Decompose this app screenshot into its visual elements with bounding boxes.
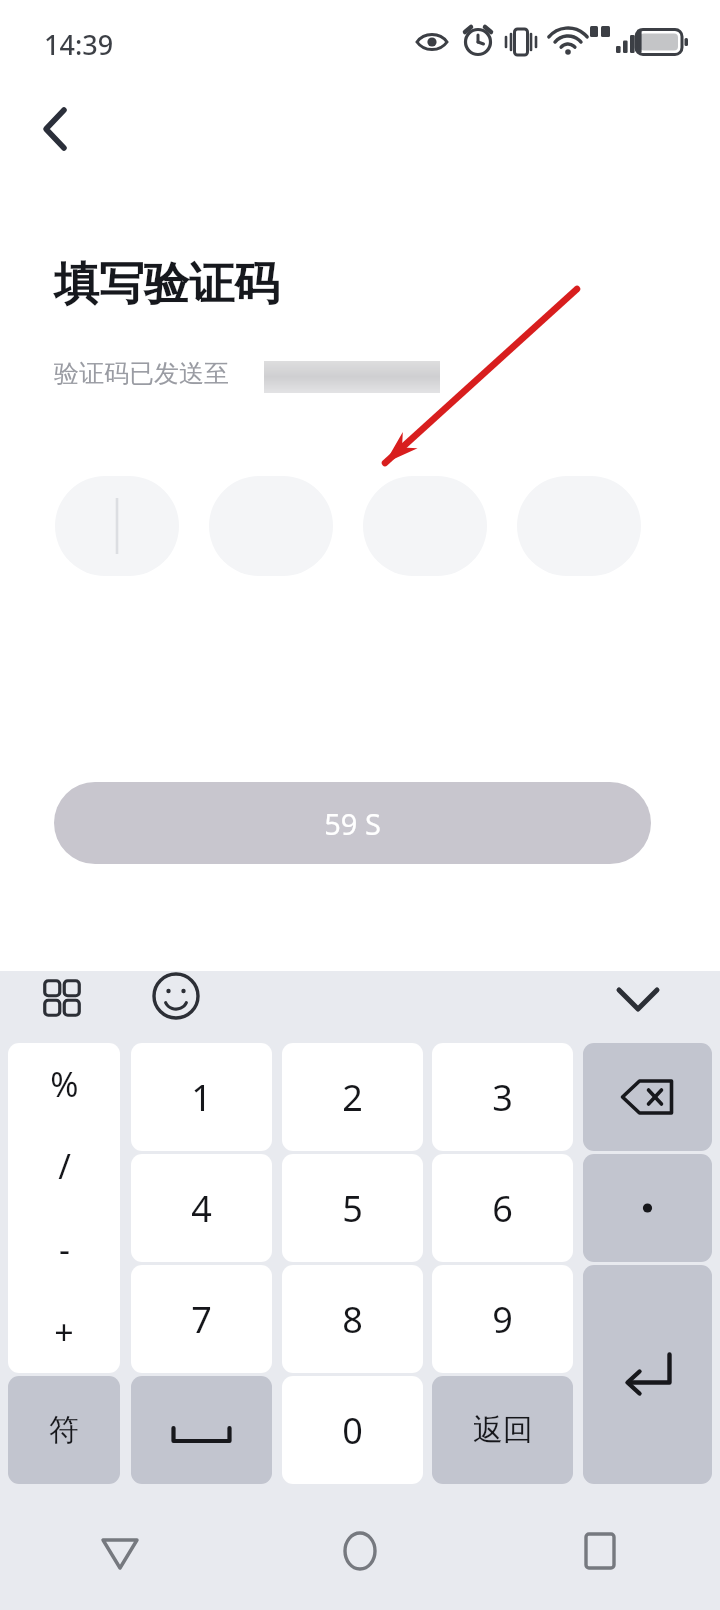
button[interactable]: Enter	[583, 1265, 712, 1484]
button[interactable]: Code digit 3	[363, 476, 487, 576]
button[interactable]: Home	[240, 1492, 480, 1610]
staticText: 返回	[473, 1411, 533, 1449]
staticText: 2	[342, 1073, 363, 1122]
staticText: 59 S	[324, 804, 381, 843]
staticText: 9	[492, 1295, 513, 1344]
staticText: /	[58, 1143, 71, 1189]
button[interactable]: Code digit 2	[209, 476, 333, 576]
staticText: 验证码已发送至	[54, 358, 229, 389]
staticText: 6	[492, 1184, 513, 1233]
button[interactable]: Period	[583, 1154, 712, 1262]
staticText: 14:39	[44, 26, 114, 63]
staticText: 7	[191, 1295, 212, 1344]
button[interactable]: 返回	[432, 1376, 573, 1484]
button[interactable]: %	[8, 1043, 120, 1373]
button[interactable]: 符	[8, 1376, 120, 1484]
button[interactable]: 3	[432, 1043, 573, 1151]
button[interactable]: 59 S	[54, 782, 651, 864]
staticText: 0	[342, 1406, 363, 1455]
button[interactable]: Recent apps	[480, 1492, 720, 1610]
button[interactable]: 4	[131, 1154, 272, 1262]
button[interactable]: Keyboard layouts	[26, 962, 98, 1034]
staticText: 3	[492, 1073, 513, 1122]
staticText: 填写验证码	[54, 256, 279, 313]
button[interactable]: 7	[131, 1265, 272, 1373]
button[interactable]: Back	[18, 92, 92, 166]
button[interactable]: 6	[432, 1154, 573, 1262]
staticText: %	[50, 1061, 79, 1107]
staticText: 1	[191, 1073, 212, 1122]
button[interactable]: 9	[432, 1265, 573, 1373]
button[interactable]: Hide keyboard	[602, 962, 674, 1034]
staticText: -	[59, 1226, 70, 1272]
button[interactable]: 1	[131, 1043, 272, 1151]
button[interactable]: 2	[282, 1043, 423, 1151]
button[interactable]: 8	[282, 1265, 423, 1373]
button[interactable]: 0	[282, 1376, 423, 1484]
button[interactable]: 5	[282, 1154, 423, 1262]
button[interactable]: Code digit 4	[517, 476, 641, 576]
staticText: 符	[49, 1411, 79, 1449]
button[interactable]: Code digit 1	[55, 476, 179, 576]
staticText: 4	[191, 1184, 212, 1233]
staticText: +	[54, 1309, 74, 1355]
staticText: 5	[342, 1184, 363, 1233]
button[interactable]: Backspace	[583, 1043, 712, 1151]
button[interactable]: Emoji	[140, 960, 212, 1032]
staticText: 8	[342, 1295, 363, 1344]
button[interactable]: Back	[0, 1492, 240, 1610]
button[interactable]: Space	[131, 1376, 272, 1484]
